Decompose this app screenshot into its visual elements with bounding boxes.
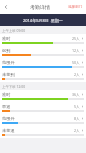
staticText: 36人	[72, 92, 80, 97]
staticText: 准时	[2, 92, 11, 97]
staticText: 准时	[2, 36, 11, 41]
button[interactable]: 未签退	[0, 126, 86, 138]
staticText: 25人	[72, 36, 80, 41]
button[interactable]: 早退	[0, 102, 86, 114]
button[interactable]: 范围外	[0, 58, 86, 70]
button[interactable]: Back	[0, 1, 12, 13]
button[interactable]: 准时	[0, 34, 86, 46]
button[interactable]: 准时	[0, 90, 86, 102]
staticText: 考勤详情	[30, 4, 50, 10]
button[interactable]: 选择部门	[68, 5, 86, 10]
staticText: 早退	[2, 104, 11, 109]
staticText: 上午下班 12:00	[2, 84, 26, 89]
staticText: 迟到	[2, 48, 11, 53]
staticText: 范围外	[2, 116, 15, 121]
staticText: 50人	[72, 60, 80, 65]
button[interactable]: 范围外	[0, 114, 86, 126]
button[interactable]: 未签到	[0, 70, 86, 82]
staticText: 5人	[74, 104, 80, 109]
staticText: 上午上班 09:00	[2, 28, 26, 33]
staticText: 2014年5月8日 星期一	[23, 18, 63, 23]
staticText: 2人	[74, 128, 80, 133]
staticText: 未签退	[2, 128, 15, 133]
staticText: 选择部门	[68, 5, 83, 10]
button[interactable]: 迟到	[0, 46, 86, 58]
staticText: 2人	[74, 72, 80, 77]
staticText: 12人	[72, 48, 80, 53]
staticText: 8人	[74, 116, 80, 121]
staticText: 范围外	[2, 60, 15, 65]
staticText: 未签到	[2, 72, 15, 77]
